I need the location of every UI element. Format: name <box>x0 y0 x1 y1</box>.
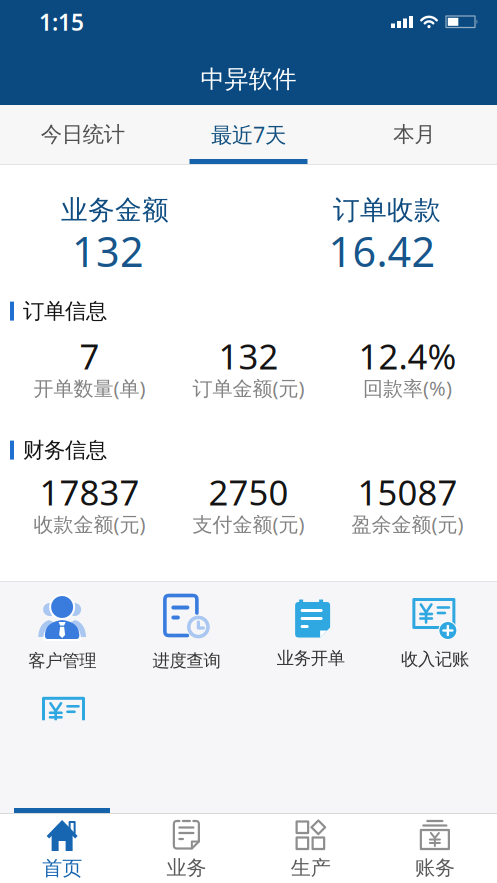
button[interactable]: 业务开单 <box>248 595 373 669</box>
staticText: 订单信息 <box>23 298 107 324</box>
staticText: 业务 <box>166 855 206 880</box>
staticText: 12.4% <box>358 333 456 379</box>
staticText: 今日统计 <box>41 121 125 148</box>
staticText: 首页 <box>42 856 82 881</box>
button[interactable]: 账务 <box>373 814 497 880</box>
staticText: 17837 <box>39 469 139 515</box>
staticText: 订单金额(元) <box>192 375 304 401</box>
button[interactable]: 业务 <box>124 814 248 880</box>
staticText: 132 <box>72 224 144 278</box>
staticText: 生产 <box>291 855 331 880</box>
staticText: 16.42 <box>328 224 435 278</box>
button[interactable]: 首页 <box>0 814 124 881</box>
staticText: 最近7天 <box>211 120 286 149</box>
button[interactable]: 收入记账 <box>373 594 497 670</box>
staticText: 财务信息 <box>23 437 107 463</box>
staticText: 业务开单 <box>277 647 345 669</box>
staticText: 2750 <box>208 469 288 515</box>
button[interactable]: 今日统计 <box>0 121 166 148</box>
button[interactable]: 进度查询 <box>124 593 248 671</box>
staticText: 中异软件 <box>200 64 296 94</box>
staticText: 132 <box>218 333 278 379</box>
staticText: 收入记账 <box>401 648 469 670</box>
staticText: 15087 <box>357 469 457 515</box>
staticText: 1:15 <box>39 7 84 37</box>
staticText: 订单收款 <box>333 194 441 226</box>
button[interactable]: 支出记账 <box>0 696 124 720</box>
button[interactable]: 最近7天 <box>166 120 331 149</box>
button[interactable]: 客户管理 <box>0 593 124 671</box>
staticText: 账务 <box>415 855 455 880</box>
staticText: 客户管理 <box>28 650 96 671</box>
staticText: 本月 <box>393 121 435 148</box>
staticText: 回款率(%) <box>363 375 452 401</box>
staticText: 收款金额(元) <box>33 511 145 537</box>
staticText: 进度查询 <box>152 650 220 671</box>
staticText: 7 <box>79 333 99 379</box>
button[interactable]: 生产 <box>248 814 373 880</box>
staticText: 盈余金额(元) <box>351 511 463 537</box>
staticText: 支付金额(元) <box>192 511 304 537</box>
staticText: 开单数量(单) <box>33 375 145 401</box>
staticText: 业务金额 <box>61 194 169 226</box>
button[interactable]: 本月 <box>331 121 497 148</box>
